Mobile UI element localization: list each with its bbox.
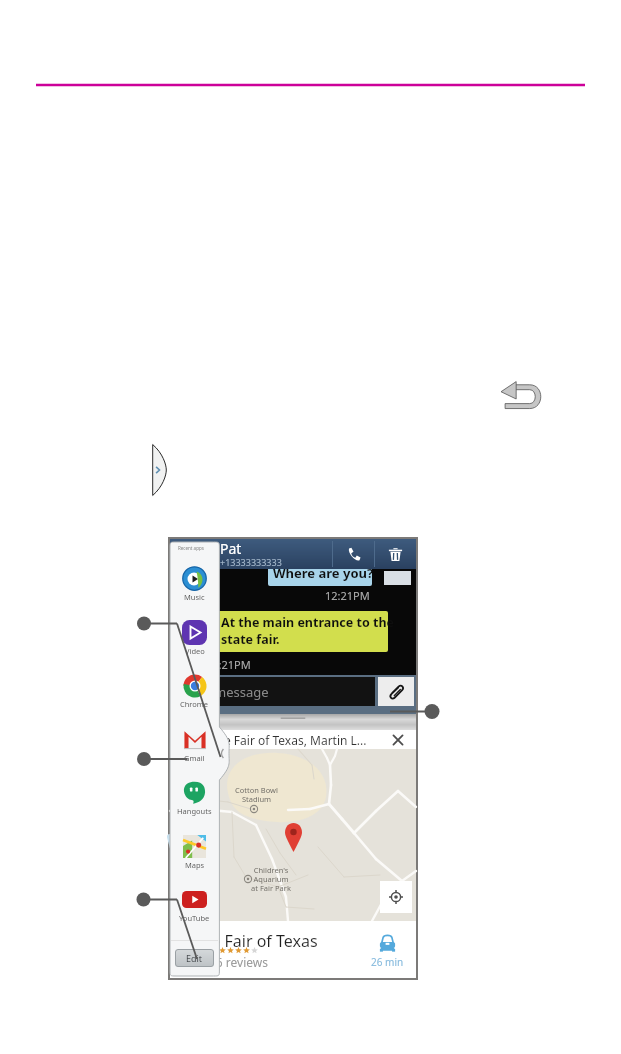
button[interactable]: Call <box>333 539 374 569</box>
button[interactable]: Delete <box>375 539 416 569</box>
staticText: Gmail <box>184 753 205 763</box>
button[interactable]: Directions, 26 min <box>357 935 417 969</box>
staticText: 12:21PM <box>206 657 251 672</box>
staticText: Recent apps <box>178 545 204 551</box>
staticText: Hangouts <box>177 806 212 816</box>
staticText: Maps <box>185 860 205 870</box>
button[interactable]: Hangouts <box>170 780 219 820</box>
button[interactable]: Edit <box>175 949 214 967</box>
staticText: YouTube <box>179 913 210 923</box>
button[interactable]: Attach <box>378 677 414 706</box>
staticText: Edit <box>186 952 203 964</box>
staticText: Children's Aquarium at Fair Park <box>251 865 291 893</box>
staticText: State Fair of Texas <box>182 930 318 952</box>
button[interactable]: Video <box>170 620 219 660</box>
button[interactable]: My location <box>380 881 412 913</box>
button[interactable]: Close <box>380 730 416 749</box>
button[interactable]: YouTube <box>170 887 219 927</box>
staticText: Pat <box>220 539 242 558</box>
staticText: +13333333333 <box>220 556 282 568</box>
button[interactable]: Music <box>170 566 219 606</box>
staticText: Cotton Bowl Stadium <box>235 785 278 804</box>
button[interactable]: Gmail <box>170 727 219 767</box>
button[interactable]: Chrome <box>170 673 219 713</box>
staticText: Music <box>184 592 205 602</box>
staticText: Chrome <box>180 699 209 709</box>
button[interactable]: Maps <box>170 834 219 874</box>
staticText: Enter message <box>178 683 269 701</box>
staticText: 12:21PM <box>325 588 370 603</box>
staticText: Video <box>185 646 205 656</box>
staticText: State Fair of Texas, Martin L... <box>202 732 380 748</box>
staticText: Where are you? <box>273 564 374 582</box>
staticText: 26 reviews <box>209 954 268 970</box>
staticText: 26 min <box>371 955 404 969</box>
staticText: At the main entrance to the state fair. <box>221 614 396 648</box>
